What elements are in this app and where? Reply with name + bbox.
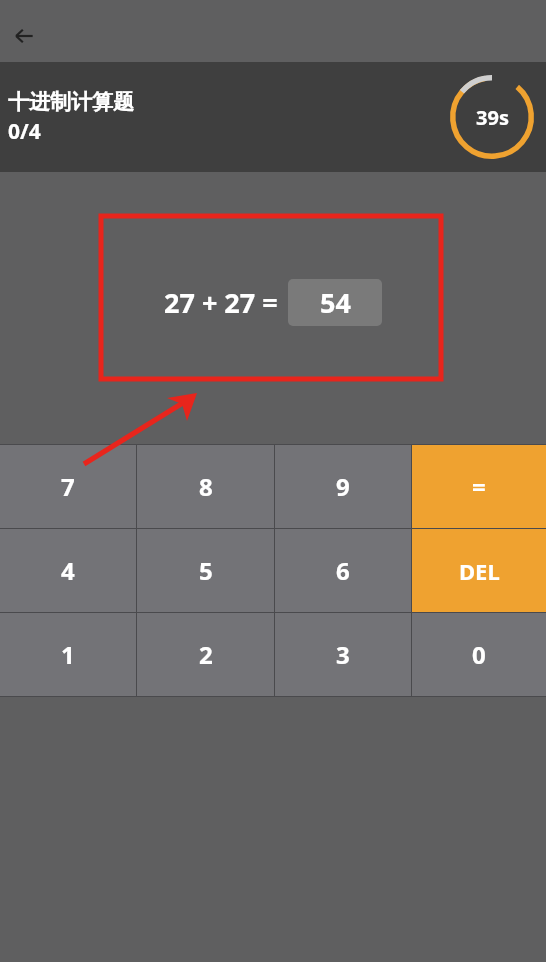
button[interactable]: 6 xyxy=(275,529,411,612)
button[interactable]: = xyxy=(412,445,546,528)
staticText: 十进制计算题 xyxy=(8,89,134,115)
staticText: 1 xyxy=(61,638,75,671)
button[interactable]: 7 xyxy=(0,445,136,528)
button[interactable]: 3 xyxy=(275,613,411,696)
staticText: 8 xyxy=(199,470,213,503)
staticText: 2 xyxy=(199,638,213,671)
button[interactable]: 1 xyxy=(0,613,136,696)
staticText: 5 xyxy=(199,554,213,587)
staticText: 9 xyxy=(336,470,350,503)
staticText: 27 + 27 = xyxy=(164,284,278,321)
button[interactable]: 4 xyxy=(0,529,136,612)
button[interactable]: 5 xyxy=(137,529,274,612)
button[interactable]: 2 xyxy=(137,613,274,696)
staticText: = xyxy=(472,470,486,503)
button[interactable]: DEL xyxy=(412,529,546,612)
button[interactable]: Timer 39 seconds xyxy=(448,73,536,161)
button[interactable]: 8 xyxy=(137,445,274,528)
staticText: 39s xyxy=(476,104,509,131)
staticText: 54 xyxy=(320,284,351,321)
staticText: 7 xyxy=(61,470,75,503)
staticText: 3 xyxy=(336,638,350,671)
staticText: 4 xyxy=(61,554,75,587)
staticText: 6 xyxy=(336,554,350,587)
staticText: 0 xyxy=(472,638,486,671)
button[interactable]: 0 xyxy=(412,613,546,696)
button[interactable]: 9 xyxy=(275,445,411,528)
staticText: DEL xyxy=(459,556,500,586)
staticText: 0/4 xyxy=(8,117,41,146)
button[interactable]: 54 xyxy=(288,279,382,326)
button[interactable]: Back xyxy=(4,16,44,56)
